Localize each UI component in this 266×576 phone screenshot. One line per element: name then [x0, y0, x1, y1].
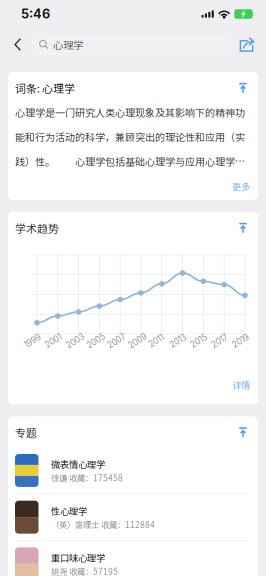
staticText: 2001	[44, 336, 62, 346]
staticText: 专题	[15, 425, 37, 440]
button[interactable]: 重口味心理学	[15, 541, 250, 576]
button[interactable]: 心理学	[31, 34, 232, 54]
button[interactable]: Collapse section	[236, 81, 250, 95]
staticText: 5:46	[21, 6, 50, 22]
staticText: 2013	[169, 336, 187, 346]
button[interactable]: 微表情心理学	[15, 447, 250, 493]
button[interactable]: Collapse section	[236, 221, 250, 235]
staticText: 2015	[190, 336, 208, 346]
staticText: 心理学是一门研究人类心理现象及其影响下的精神功能和行为活动的科学，兼顾突出的理论…	[15, 105, 245, 168]
staticText: 2007	[107, 336, 127, 346]
staticText: 心理学	[53, 37, 83, 52]
staticText: 微表情心理学	[51, 457, 105, 471]
staticText: 2019	[231, 336, 249, 346]
button[interactable]: 更多	[232, 179, 250, 193]
staticText: 词条: 心理学	[15, 80, 75, 96]
button[interactable]: Back	[5, 28, 31, 60]
staticText: 性心理学	[51, 504, 87, 517]
staticText: 2011	[148, 336, 164, 346]
staticText: 2003	[65, 336, 85, 346]
staticText: 1999	[23, 336, 41, 346]
staticText: 学术趋势	[15, 220, 59, 236]
staticText: 2017	[211, 336, 229, 346]
button[interactable]: Collapse section	[236, 425, 250, 439]
staticText: 2009	[127, 336, 147, 346]
staticText: 重口味心理学	[51, 551, 105, 564]
button[interactable]: 详情	[232, 378, 250, 391]
button[interactable]: 性心理学	[15, 494, 250, 540]
staticText: 2005	[86, 336, 106, 346]
button[interactable]: Share	[232, 28, 262, 60]
staticText: 姚尧 收藏：57195	[51, 565, 118, 576]
staticText: 详情	[232, 378, 250, 391]
staticText: 徐谦 收藏：175458	[51, 472, 123, 484]
staticText: 更多	[232, 179, 250, 193]
staticText: （英）霭理士 收藏：112884	[51, 518, 155, 530]
